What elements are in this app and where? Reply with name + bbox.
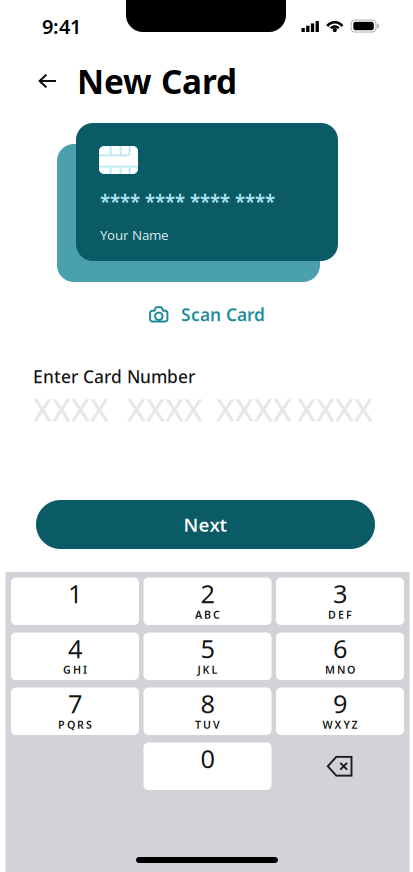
staticText: Your Name — [100, 226, 169, 244]
button[interactable]: 6 — [276, 632, 404, 680]
button[interactable]: 8 — [143, 687, 271, 735]
staticText: T U V — [195, 717, 220, 732]
button[interactable]: 9 — [276, 687, 404, 735]
staticText: 2 — [200, 577, 214, 610]
staticText: 6 — [333, 632, 347, 665]
staticText: G H I — [63, 662, 87, 677]
staticText: 7 — [68, 687, 82, 720]
staticText: Enter Card Number — [33, 365, 195, 388]
staticText: 8 — [200, 687, 214, 720]
button[interactable]: 7 — [11, 687, 139, 735]
staticText: Next — [183, 512, 227, 537]
button[interactable]: 0 — [143, 742, 271, 790]
staticText: M N O — [325, 662, 355, 677]
staticText: 3 — [333, 577, 347, 610]
staticText: J K L — [197, 662, 217, 677]
staticText: Scan Card — [181, 303, 265, 326]
staticText: 0 — [200, 742, 214, 775]
button[interactable]: Delete — [276, 742, 404, 790]
staticText: W X Y Z — [322, 717, 357, 732]
staticText: 5 — [200, 632, 214, 665]
staticText: A B C — [195, 607, 220, 622]
button[interactable]: 2 — [143, 577, 271, 625]
staticText: P Q R S — [58, 717, 92, 732]
button[interactable]: Next — [36, 500, 375, 549]
button[interactable]: 5 — [143, 632, 271, 680]
staticText: 9 — [333, 687, 347, 720]
staticText: XXXX XXXX XXXX XXXX — [33, 389, 373, 430]
button[interactable]: 3 — [276, 577, 404, 625]
staticText: **** **** **** **** — [100, 189, 275, 214]
staticText: 1 — [68, 577, 82, 610]
button[interactable]: 1 — [11, 577, 139, 625]
staticText: D E F — [328, 607, 352, 622]
staticText: New Card — [77, 59, 237, 103]
staticText: 9:41 — [42, 13, 81, 40]
button[interactable]: Back — [38, 72, 58, 90]
button[interactable]: 4 — [11, 632, 139, 680]
staticText: 4 — [68, 632, 82, 665]
button[interactable]: Scan Card — [149, 303, 265, 326]
